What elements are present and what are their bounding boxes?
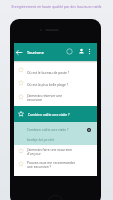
- staticText: excursion: [27, 97, 42, 101]
- button[interactable]: Profile: [77, 47, 86, 56]
- button[interactable]: Play audio: [87, 128, 91, 132]
- staticText: kombjɛ kut yn vizit: [27, 137, 55, 141]
- button[interactable]: Pouvez-vous me recommander: [14, 157, 97, 171]
- staticText: Tourisme: [27, 50, 44, 55]
- staticText: Pouvez-vous me recommander: [27, 160, 76, 164]
- staticText: d'un jour: [27, 151, 41, 155]
- button[interactable]: Combien coûte une visite ?: [14, 106, 97, 122]
- button[interactable]: Search: [65, 47, 74, 56]
- staticText: Enregistrement en haute qualité par des …: [0, 4, 113, 9]
- staticText: une excursion ?: [27, 164, 51, 168]
- button[interactable]: Back: [15, 48, 24, 57]
- staticText: Où est la plus belle plage ?: [27, 82, 69, 86]
- button[interactable]: Où est la plus belle plage ?: [14, 77, 97, 89]
- button[interactable]: J'aimerais faire une excursion: [14, 145, 97, 157]
- button[interactable]: More options: [85, 47, 94, 56]
- staticText: Où est le bureau de poste ?: [27, 70, 70, 74]
- button[interactable]: J'aimerais réserver une: [14, 89, 97, 106]
- staticText: J'aimerais réserver une: [27, 93, 63, 97]
- staticText: J'aimerais faire une excursion: [27, 147, 73, 151]
- staticText: Combien coûte une visite ?: [28, 112, 70, 116]
- staticText: Combien coûte une visite ?: [27, 127, 69, 131]
- button[interactable]: Où est le bureau de poste ?: [14, 63, 97, 77]
